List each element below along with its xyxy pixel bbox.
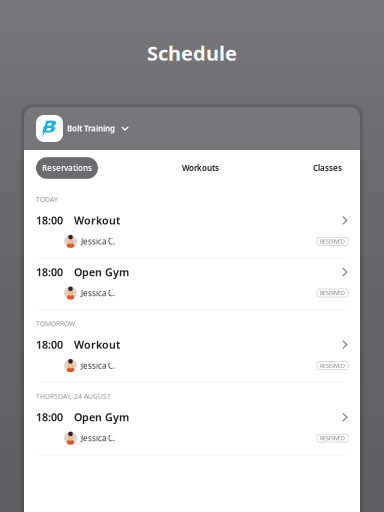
staticText: RESERVED: [320, 238, 345, 245]
button[interactable]: Classes: [265, 163, 342, 173]
button[interactable]: 18:00: [24, 259, 360, 310]
staticText: Jessica C.: [81, 288, 115, 298]
staticText: RESERVED: [320, 362, 345, 369]
staticText: Jessica C.: [81, 236, 115, 247]
staticText: RESERVED: [320, 289, 345, 297]
button[interactable]: 18:00: [24, 404, 360, 455]
staticText: Schedule: [147, 40, 237, 66]
staticText: Classes: [313, 163, 342, 173]
staticText: Reservations: [42, 163, 92, 173]
staticText: 18:00: [36, 337, 63, 352]
button[interactable]: Reservations: [36, 157, 98, 179]
staticText: THURSDAY, 24 AUGUST: [36, 392, 111, 401]
staticText: TODAY: [36, 195, 58, 204]
staticText: Workout: [74, 213, 120, 227]
staticText: Open Gym: [74, 265, 129, 279]
staticText: 18:00: [36, 265, 63, 279]
staticText: 18:00: [36, 410, 63, 424]
staticText: 18:00: [36, 213, 63, 227]
staticText: Bolt Training: [67, 123, 115, 134]
button[interactable]: 18:00: [24, 207, 360, 258]
button[interactable]: Workouts: [136, 163, 265, 173]
staticText: Open Gym: [74, 410, 129, 424]
button[interactable]: Bolt Training: [36, 115, 129, 142]
staticText: TOMORROW: [36, 319, 75, 328]
button[interactable]: 18:00: [24, 331, 360, 382]
staticText: Workouts: [182, 163, 219, 173]
staticText: Jessica C.: [81, 433, 115, 443]
staticText: RESERVED: [320, 435, 345, 442]
staticText: Jessica C.: [81, 360, 115, 371]
staticText: Workout: [74, 337, 120, 352]
